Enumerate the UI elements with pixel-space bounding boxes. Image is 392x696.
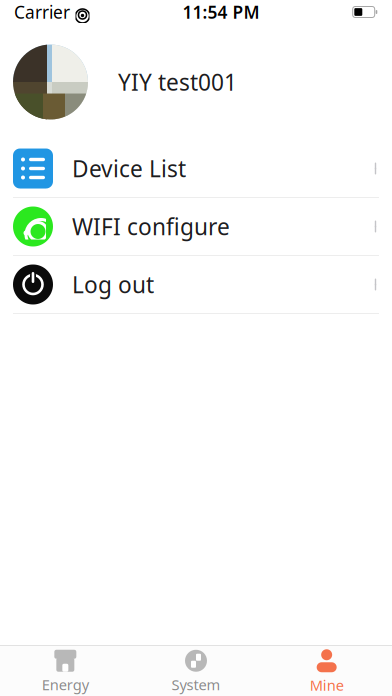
staticText: 11:54 PM bbox=[182, 0, 259, 23]
staticText: YIY test001 bbox=[118, 67, 237, 97]
staticText: Log out bbox=[72, 269, 154, 299]
staticText: System bbox=[171, 675, 220, 694]
staticText: Mine bbox=[310, 675, 344, 695]
staticText: Carrier bbox=[14, 0, 70, 23]
button[interactable]: Device List bbox=[0, 140, 392, 198]
button[interactable]: WIFI configure bbox=[0, 198, 392, 256]
staticText: Device List bbox=[72, 153, 186, 183]
button[interactable]: Log out bbox=[0, 256, 392, 314]
staticText: WIFI configure bbox=[72, 211, 230, 241]
button[interactable]: Mine bbox=[261, 643, 392, 696]
button[interactable]: System bbox=[131, 644, 261, 696]
button[interactable]: Energy bbox=[0, 644, 131, 696]
staticText: Energy bbox=[42, 675, 89, 694]
